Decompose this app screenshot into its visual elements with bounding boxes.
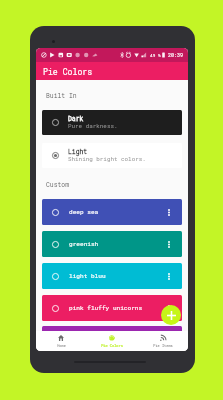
button[interactable]: More options	[164, 239, 174, 249]
staticText: 20:39	[168, 52, 184, 59]
staticText: deep sea	[69, 208, 99, 216]
staticText: pink fluffy unicorns	[69, 304, 143, 312]
staticText: Light	[68, 147, 88, 155]
staticText: Shining bright colors.	[68, 155, 146, 163]
button[interactable]: Home	[36, 331, 86, 351]
button[interactable]: pink fluffy unicorns	[42, 295, 182, 321]
button[interactable]: Pie Items	[137, 331, 188, 351]
staticText: Home	[57, 343, 66, 348]
button[interactable]: deep sea	[42, 199, 182, 225]
button[interactable]: More options	[42, 326, 182, 351]
staticText: Pie Colors	[43, 66, 93, 77]
staticText: Pie Colors	[101, 343, 123, 348]
staticText: Dark	[68, 114, 84, 122]
staticText: 49 %	[150, 52, 161, 58]
button[interactable]: More options	[164, 271, 174, 281]
button[interactable]: More options	[164, 334, 174, 344]
staticText: Custom	[46, 180, 188, 188]
button[interactable]: Dark	[42, 110, 182, 135]
button[interactable]: greenish	[42, 231, 182, 257]
button[interactable]: Light	[42, 143, 182, 168]
button[interactable]: More options	[164, 207, 174, 217]
button[interactable]: More options	[164, 303, 174, 313]
button[interactable]: Pie Colors	[86, 331, 137, 351]
staticText: light bluu	[69, 272, 106, 280]
staticText: Pure darkness.	[68, 122, 118, 130]
staticText: greenish	[69, 240, 99, 248]
staticText: Built In	[46, 91, 188, 99]
button[interactable]: light bluu	[42, 263, 182, 289]
button[interactable]: Add color	[161, 305, 181, 325]
staticText: Pie Items	[153, 343, 173, 348]
